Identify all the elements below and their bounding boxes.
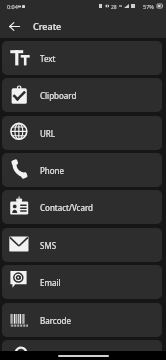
button[interactable]: URL [2, 116, 162, 150]
button[interactable]: Barcode [2, 303, 162, 337]
staticText: 0:04 [7, 3, 18, 10]
staticText: 28 [111, 4, 117, 11]
staticText: Create [33, 20, 62, 32]
staticText: Barcode [40, 315, 71, 326]
button[interactable]: Text [2, 41, 162, 75]
button[interactable]: Wifi [2, 340, 162, 360]
button[interactable]: Contact/Vcard [2, 190, 162, 224]
staticText: Phone [40, 165, 65, 176]
staticText: Clipboard [40, 90, 77, 101]
staticText: 57% [143, 3, 154, 10]
button[interactable]: Back [5, 17, 23, 35]
button[interactable]: Phone [2, 153, 162, 187]
button[interactable]: SMS [2, 228, 162, 262]
staticText: Email [40, 277, 61, 288]
button[interactable]: Email [2, 265, 162, 299]
button[interactable]: Clipboard [2, 78, 162, 112]
staticText: URL [40, 128, 56, 139]
staticText: Text [40, 53, 56, 64]
staticText: SMS [40, 240, 57, 251]
staticText: Contact/Vcard [40, 202, 93, 213]
